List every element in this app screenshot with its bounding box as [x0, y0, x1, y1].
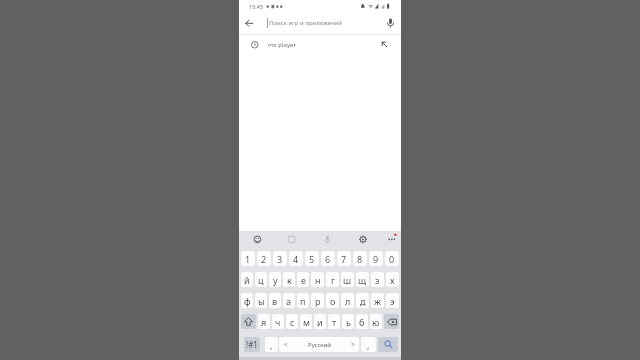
- button[interactable]: ц: [255, 272, 267, 287]
- button[interactable]: г: [326, 272, 339, 287]
- staticText: ж: [374, 295, 381, 307]
- staticText: ,: [367, 339, 370, 351]
- button[interactable]: [272, 231, 305, 251]
- button[interactable]: в: [269, 293, 281, 308]
- button[interactable]: й: [241, 272, 253, 287]
- staticText: ф: [244, 295, 251, 307]
- button[interactable]: [239, 231, 272, 251]
- button[interactable]: 0: [385, 251, 399, 266]
- button[interactable]: ф: [241, 293, 253, 308]
- staticText: 7: [341, 253, 347, 265]
- staticText: <: [284, 340, 288, 349]
- staticText: э: [390, 295, 395, 307]
- button[interactable]: [305, 231, 337, 251]
- button[interactable]: ж: [371, 293, 384, 308]
- staticText: й: [244, 274, 250, 286]
- button[interactable]: щ: [356, 272, 369, 287]
- button[interactable]: н: [311, 272, 324, 287]
- staticText: в: [272, 295, 278, 307]
- button[interactable]: [378, 337, 398, 352]
- button[interactable]: у: [269, 272, 281, 287]
- staticText: ,: [270, 339, 273, 351]
- staticText: а: [286, 295, 292, 307]
- staticText: л: [345, 295, 351, 307]
- staticText: ц: [258, 274, 264, 286]
- button[interactable]: 4: [289, 251, 303, 266]
- button[interactable]: ю: [370, 314, 382, 329]
- button[interactable]: д: [356, 293, 369, 308]
- staticText: 9: [373, 253, 379, 265]
- button[interactable]: !#1: [244, 337, 260, 352]
- button[interactable]: mx player: [239, 35, 401, 54]
- staticText: д: [360, 295, 366, 307]
- button[interactable]: и: [314, 314, 326, 329]
- staticText: ч: [275, 316, 281, 328]
- button[interactable]: [369, 231, 401, 251]
- staticText: е: [301, 274, 306, 286]
- staticText: г: [331, 274, 335, 286]
- button[interactable]: р: [311, 293, 324, 308]
- staticText: т: [332, 316, 337, 328]
- staticText: ш: [343, 274, 352, 286]
- button[interactable]: б: [356, 314, 368, 329]
- button[interactable]: п: [297, 293, 309, 308]
- button[interactable]: т: [328, 314, 340, 329]
- staticText: о: [330, 295, 336, 307]
- staticText: Русский: [308, 341, 331, 349]
- staticText: 5: [309, 253, 315, 265]
- button[interactable]: х: [386, 272, 399, 287]
- button[interactable]: [384, 314, 399, 329]
- staticText: 3: [277, 253, 283, 265]
- button[interactable]: ч: [272, 314, 284, 329]
- staticText: п: [300, 295, 306, 307]
- button[interactable]: [239, 12, 259, 34]
- button[interactable]: 1: [241, 251, 255, 266]
- button[interactable]: з: [371, 272, 384, 287]
- button[interactable]: с: [286, 314, 298, 329]
- staticText: mx player: [268, 41, 296, 49]
- button[interactable]: ,: [361, 337, 376, 352]
- button[interactable]: а: [283, 293, 295, 308]
- button[interactable]: э: [386, 293, 399, 308]
- staticText: ы: [258, 295, 265, 307]
- staticText: !#1: [246, 339, 258, 350]
- button[interactable]: л: [341, 293, 354, 308]
- button[interactable]: я: [258, 314, 270, 329]
- button[interactable]: к: [283, 272, 295, 287]
- button[interactable]: 9: [369, 251, 383, 266]
- staticText: щ: [358, 274, 367, 286]
- staticText: >: [351, 340, 355, 349]
- button[interactable]: 2: [257, 251, 271, 266]
- staticText: м: [303, 316, 310, 328]
- button[interactable]: 8: [353, 251, 367, 266]
- staticText: и: [317, 316, 323, 328]
- button[interactable]: [379, 12, 401, 34]
- button[interactable]: ,: [265, 337, 278, 352]
- staticText: ю: [372, 316, 380, 328]
- button[interactable]: о: [326, 293, 339, 308]
- button[interactable]: м: [300, 314, 312, 329]
- button[interactable]: [337, 231, 369, 251]
- staticText: н: [315, 274, 321, 286]
- staticText: ь: [346, 316, 351, 328]
- button[interactable]: е: [297, 272, 309, 287]
- staticText: 8: [357, 253, 363, 265]
- button[interactable]: [241, 314, 256, 329]
- staticText: 0: [389, 253, 395, 265]
- staticText: 4: [293, 253, 299, 265]
- staticText: я: [261, 316, 267, 328]
- staticText: б: [359, 316, 365, 328]
- button[interactable]: 7: [337, 251, 351, 266]
- button[interactable]: ь: [342, 314, 354, 329]
- button[interactable]: 5: [305, 251, 319, 266]
- button[interactable]: <: [279, 337, 359, 352]
- button[interactable]: 6: [321, 251, 335, 266]
- staticText: 2: [261, 253, 267, 265]
- staticText: с: [290, 316, 295, 328]
- button[interactable]: 3: [273, 251, 287, 266]
- button[interactable]: ы: [255, 293, 267, 308]
- staticText: р: [315, 295, 321, 307]
- button[interactable]: ш: [341, 272, 354, 287]
- staticText: к: [287, 274, 292, 286]
- staticText: 1: [245, 253, 251, 265]
